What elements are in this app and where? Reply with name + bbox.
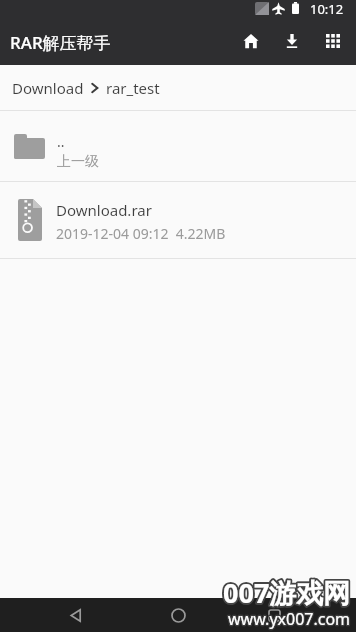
staticText: www.yx007.com (228, 608, 351, 630)
button[interactable] (230, 16, 271, 65)
staticText: Download.rar (56, 200, 152, 220)
button[interactable]: Download (12, 78, 84, 98)
staticText: 2019-12-04 09:12 4.22MB (56, 224, 226, 243)
button[interactable]: .. (0, 111, 356, 181)
button[interactable]: rar_test (106, 78, 160, 98)
staticText: rar_test (106, 78, 160, 98)
button[interactable] (260, 601, 288, 629)
staticText: 10:12 (310, 0, 344, 16)
staticText: 007游戏网 (223, 574, 351, 611)
staticText: 上一级 (57, 153, 99, 171)
button[interactable] (271, 16, 312, 65)
staticText: www.yx007.com (228, 608, 351, 630)
button[interactable]: Download.rar (0, 182, 356, 258)
staticText: RAR解压帮手 (10, 31, 111, 54)
button[interactable] (164, 601, 192, 629)
button[interactable] (62, 601, 90, 629)
button[interactable] (312, 16, 353, 65)
staticText: .. (57, 132, 65, 151)
staticText: Download (12, 78, 84, 98)
staticText: 007游戏网 (223, 574, 351, 611)
